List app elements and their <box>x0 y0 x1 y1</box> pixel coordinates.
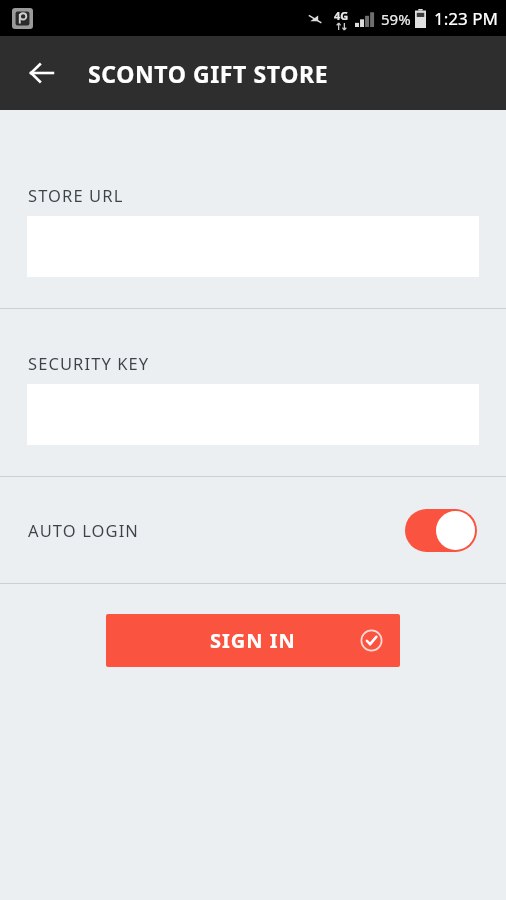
button[interactable]: Back <box>18 49 66 97</box>
staticText: SCONTO GIFT STORE <box>88 58 329 89</box>
staticText: SIGN IN <box>210 627 296 654</box>
staticText: 4G <box>334 8 349 23</box>
button[interactable]: AUTO LOGIN <box>0 477 506 583</box>
staticText: 59% <box>381 9 411 29</box>
button[interactable]: SIGN IN <box>106 614 400 667</box>
staticText: 1:23 PM <box>434 7 498 30</box>
staticText: STORE URL <box>28 184 124 206</box>
staticText: AUTO LOGIN <box>28 519 139 541</box>
staticText: SECURITY KEY <box>28 352 150 374</box>
